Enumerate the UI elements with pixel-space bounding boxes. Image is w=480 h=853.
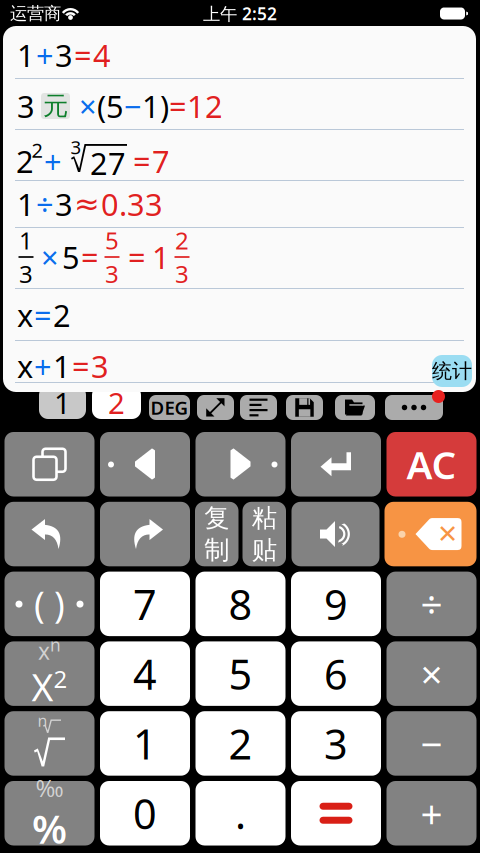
button[interactable]: Move right (195, 432, 285, 496)
button[interactable]: More (385, 395, 443, 420)
button[interactable]: equals (291, 781, 381, 845)
staticText: x (17, 346, 33, 386)
staticText: 2 (53, 663, 67, 695)
staticText: 3 (175, 258, 189, 290)
staticText: = (81, 237, 99, 277)
staticText: AC (406, 439, 456, 490)
staticText: = (72, 346, 90, 386)
staticText: X (31, 662, 53, 711)
button[interactable]: . (195, 781, 285, 845)
staticText: × (79, 86, 97, 126)
staticText: + (420, 788, 442, 839)
staticText: + (36, 35, 54, 75)
button[interactable]: Enter (291, 432, 381, 496)
staticText: = (169, 86, 187, 126)
button[interactable]: 6 (291, 641, 381, 706)
button[interactable]: Open (335, 395, 375, 420)
staticText: ÷ (420, 578, 442, 629)
staticText: 3 (105, 258, 119, 290)
staticText: × (420, 648, 442, 699)
staticText: 5 (105, 224, 119, 256)
button[interactable]: 1 (39, 386, 86, 419)
button[interactable]: 9 (291, 572, 381, 636)
staticText: ‰ (35, 772, 63, 804)
button[interactable]: Save (286, 395, 323, 420)
staticText: 1) (142, 86, 169, 126)
staticText: n (37, 710, 47, 731)
button[interactable]: Parentheses (4, 572, 94, 636)
button[interactable]: AC (386, 432, 476, 496)
button[interactable]: Delete (384, 502, 476, 566)
staticText: × (41, 237, 59, 277)
button[interactable]: − (386, 711, 476, 776)
staticText: 1 (19, 224, 33, 256)
staticText: 1 (133, 716, 157, 771)
button[interactable]: DEG (149, 395, 190, 420)
staticText: 3 (17, 86, 35, 126)
staticText: 2 (53, 295, 71, 335)
staticText: = (128, 237, 146, 277)
staticText: 9 (324, 576, 348, 631)
staticText: 运营商 (10, 3, 61, 24)
button[interactable]: 2 (195, 711, 285, 776)
button[interactable]: 0 (100, 781, 190, 845)
staticText: n (50, 633, 61, 656)
staticText: 3 (91, 346, 109, 386)
staticText: 2 (108, 383, 125, 422)
staticText: 6 (324, 646, 348, 701)
staticText: x (17, 295, 33, 335)
staticText: 3 (55, 184, 73, 224)
staticText: 12 (187, 86, 223, 126)
staticText: 统计 (432, 359, 472, 383)
button[interactable]: Expand (197, 395, 234, 420)
staticText: 1 (17, 184, 35, 224)
button[interactable]: 7 (100, 572, 190, 636)
button[interactable]: Format (240, 395, 277, 420)
staticText: 2 (228, 716, 252, 771)
button[interactable]: ÷ (386, 572, 476, 636)
button[interactable]: percent (4, 772, 94, 853)
staticText: 27 (90, 143, 126, 183)
staticText: 制 (204, 534, 229, 566)
staticText: 上午 2:52 (203, 2, 277, 25)
staticText: + (44, 141, 62, 181)
button[interactable]: 4 (100, 641, 190, 706)
button[interactable]: Undo (4, 502, 94, 566)
staticText: + (34, 346, 52, 386)
button[interactable]: 5 (195, 641, 285, 706)
staticText: x (38, 636, 50, 666)
staticText: ✕ (437, 520, 458, 548)
staticText: 贴 (252, 534, 277, 566)
staticText: 复 (204, 502, 229, 533)
button[interactable]: × (386, 641, 476, 706)
staticText: 2 (175, 224, 189, 256)
staticText: 粘 (252, 502, 277, 533)
button[interactable]: x squared (4, 636, 94, 711)
button[interactable]: Windows (4, 432, 94, 496)
staticText: 1 (152, 237, 170, 277)
button[interactable]: square root (4, 711, 94, 776)
staticText: 0 (133, 786, 157, 841)
button[interactable]: 2 (92, 386, 141, 419)
button[interactable]: 1 (100, 711, 190, 776)
button[interactable]: Move left (100, 432, 190, 496)
button[interactable]: 复制 (195, 502, 238, 566)
staticText: (5 (97, 86, 124, 126)
staticText: 3 (70, 135, 81, 159)
button[interactable]: Speak (291, 502, 379, 566)
staticText: ≈ (74, 187, 100, 221)
staticText: 3 (324, 716, 348, 771)
staticText: 5 (228, 646, 252, 701)
staticText: 8 (228, 576, 252, 631)
staticText: DEG (150, 395, 188, 420)
button[interactable]: 3 (291, 711, 381, 776)
button[interactable]: 8 (195, 572, 285, 636)
staticText: = (133, 141, 151, 181)
button[interactable]: + (386, 781, 476, 845)
button[interactable]: 统计 (432, 355, 472, 387)
button[interactable]: 粘贴 (242, 502, 286, 566)
staticText: = (34, 295, 52, 335)
staticText: 1 (53, 346, 71, 386)
button[interactable]: Redo (100, 502, 190, 566)
staticText: 1 (54, 383, 71, 422)
